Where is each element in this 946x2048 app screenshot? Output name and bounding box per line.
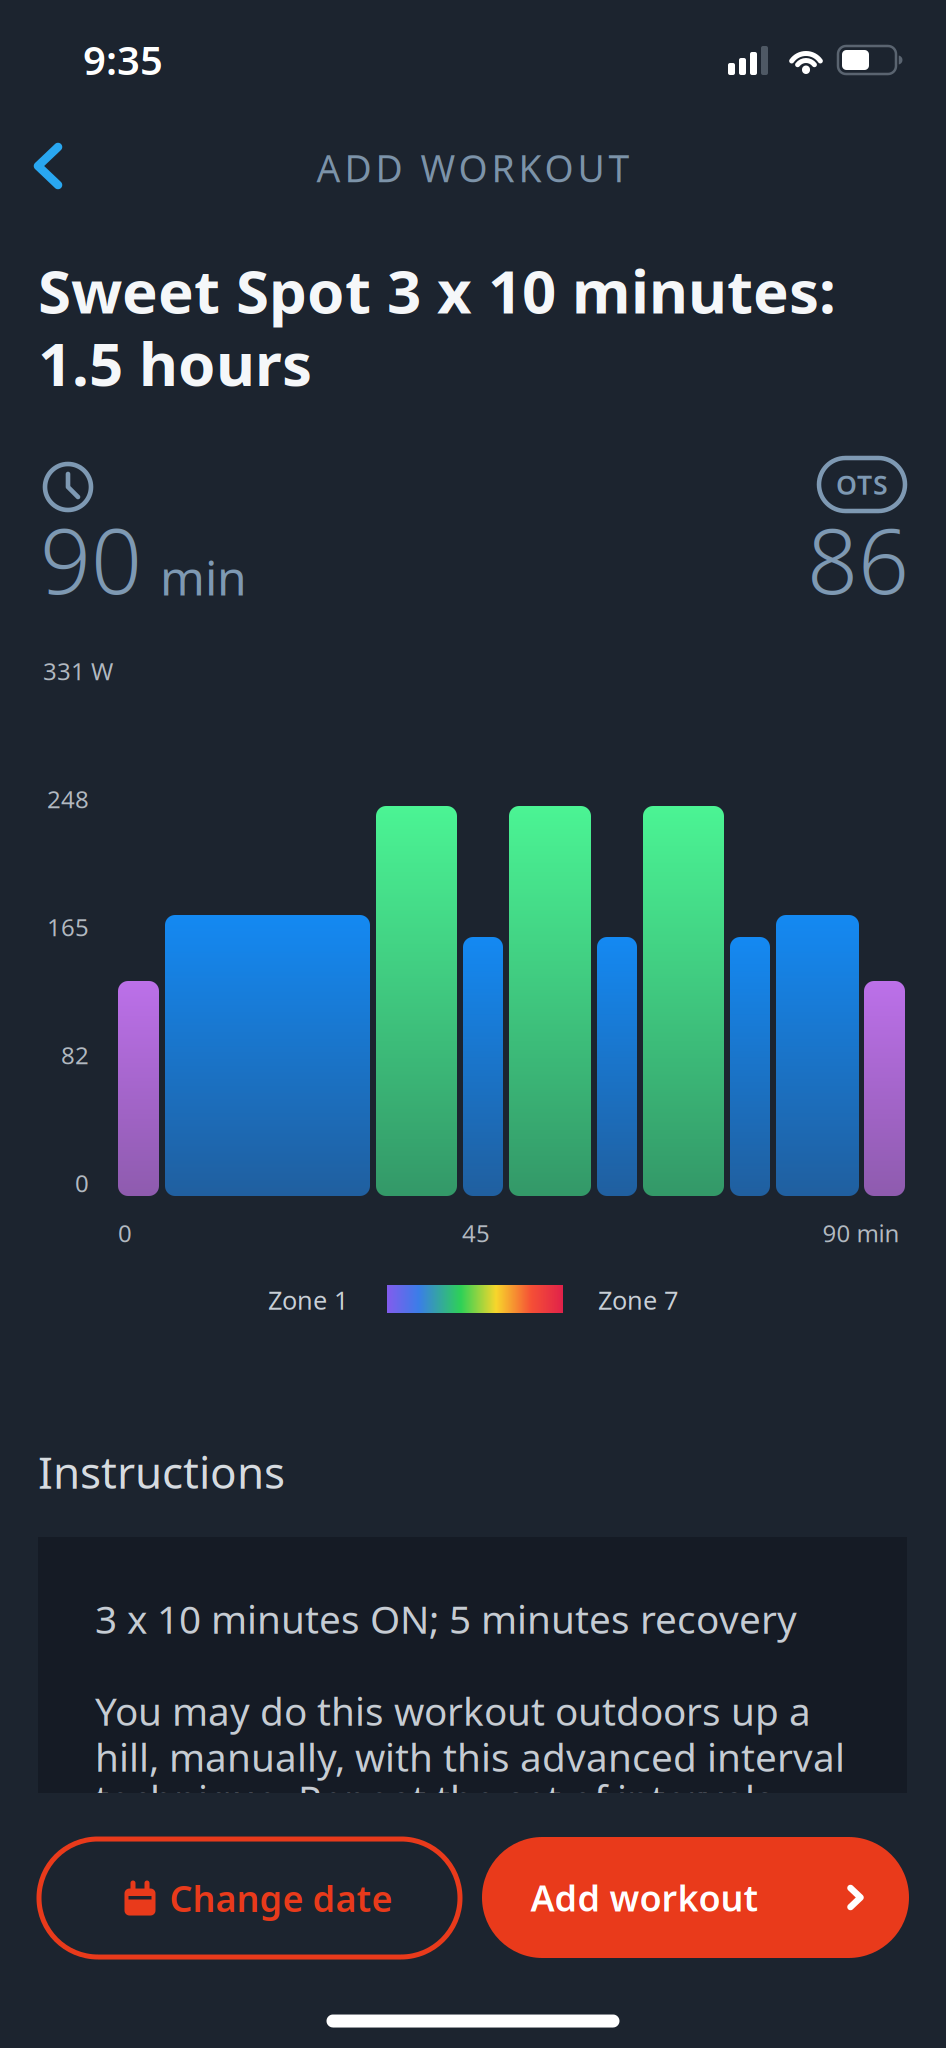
staticText: 45	[462, 1217, 490, 1249]
staticText: 165	[47, 911, 89, 943]
staticText: Change date	[169, 1874, 392, 1922]
staticText: min	[160, 545, 247, 609]
button[interactable]: Back	[23, 133, 73, 199]
staticText: 1.5 hours	[38, 323, 312, 403]
staticText: 248	[47, 783, 89, 815]
staticText: technique. Repeat the set of intervals	[95, 1773, 774, 1824]
staticText: Zone 1	[268, 1283, 348, 1317]
staticText: 86	[807, 500, 909, 619]
staticText: ADD WORKOUT	[316, 143, 629, 193]
staticText: 0	[118, 1217, 132, 1249]
staticText: 82	[61, 1039, 89, 1071]
button[interactable]: Change date	[39, 1839, 460, 1957]
staticText: 9:35	[83, 33, 163, 86]
staticText: 0	[75, 1167, 89, 1199]
staticText: 90	[40, 500, 142, 619]
staticText: You may do this workout outdoors up a	[95, 1685, 811, 1736]
button[interactable]: Add workout	[482, 1837, 909, 1958]
staticText: Instructions	[38, 1442, 285, 1501]
staticText: 90 min	[822, 1217, 899, 1249]
staticText: Zone 7	[598, 1283, 678, 1317]
staticText: OTS	[836, 467, 888, 502]
staticText: 3 x 10 minutes ON; 5 minutes recovery	[95, 1593, 797, 1644]
staticText: Add workout	[530, 1874, 758, 1921]
staticText: 331 W	[43, 655, 113, 687]
staticText: Sweet Spot 3 x 10 minutes:	[38, 250, 836, 330]
staticText: hill, manually, with this advanced inter…	[95, 1731, 845, 1782]
